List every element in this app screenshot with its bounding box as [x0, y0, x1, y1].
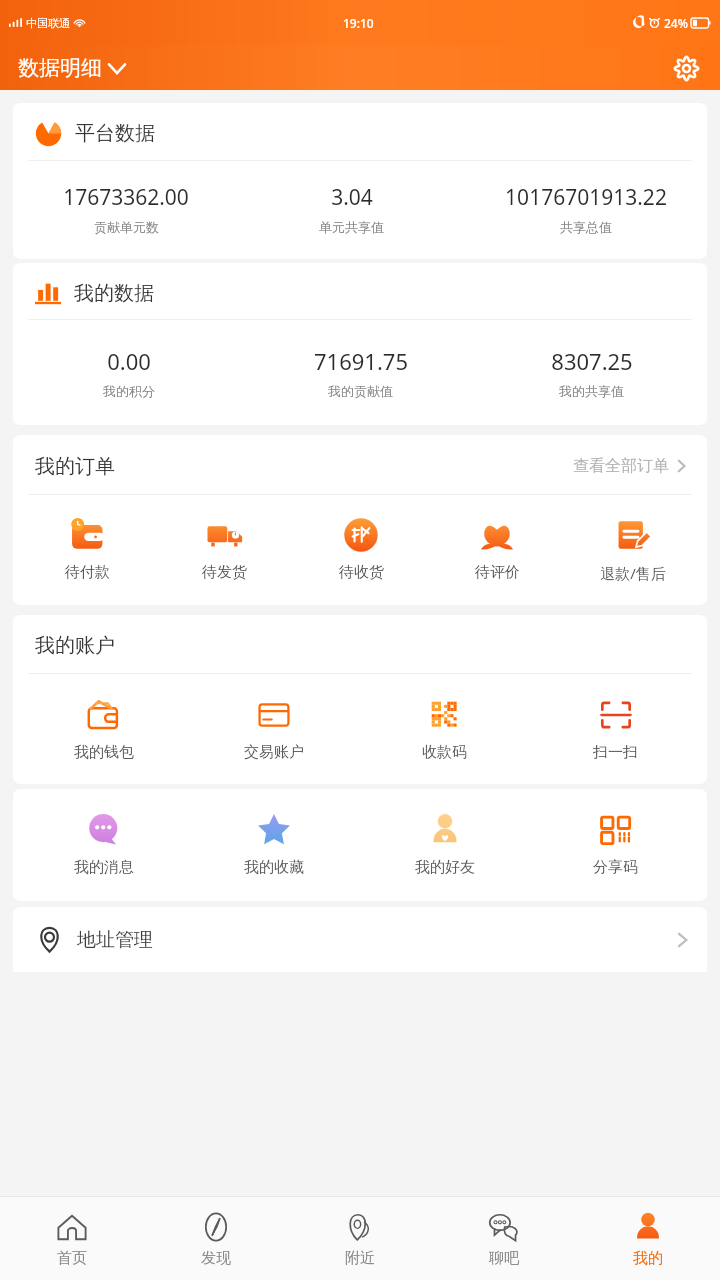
- staticText: 待付款: [65, 563, 110, 582]
- button[interactable]: 待付款: [19, 514, 156, 584]
- staticText: 数据明细: [18, 55, 102, 81]
- button[interactable]: 17673362.00: [13, 183, 239, 235]
- staticText: 交易账户: [244, 743, 304, 762]
- button[interactable]: 71691.75: [245, 346, 476, 399]
- staticText: 共享总值: [560, 219, 612, 235]
- button[interactable]: 0.00: [13, 346, 245, 399]
- staticText: 退款/售后: [600, 563, 666, 583]
- button[interactable]: 我的消息: [19, 809, 189, 879]
- button[interactable]: 地址管理: [13, 907, 707, 972]
- button[interactable]: 我的收藏: [189, 809, 359, 879]
- button[interactable]: 我的好友: [359, 809, 530, 879]
- staticText: 附近: [345, 1249, 375, 1268]
- staticText: 我的共享值: [559, 383, 624, 399]
- staticText: 0.00: [107, 346, 151, 376]
- button[interactable]: 发现: [144, 1197, 288, 1280]
- staticText: 我的消息: [74, 858, 134, 877]
- staticText: 24%: [664, 15, 688, 31]
- button[interactable]: 交易账户: [189, 694, 359, 764]
- staticText: 平台数据: [75, 121, 155, 146]
- staticText: 查看全部订单: [573, 456, 669, 476]
- staticText: 扫一扫: [593, 743, 638, 762]
- staticText: 我的好友: [415, 858, 475, 877]
- button[interactable]: 待评价: [429, 514, 565, 584]
- button[interactable]: Settings: [668, 50, 704, 86]
- button[interactable]: 退款/售后: [565, 514, 701, 585]
- staticText: 中国联通: [26, 16, 70, 30]
- staticText: 17673362.00: [63, 183, 189, 212]
- button[interactable]: 附近: [288, 1197, 432, 1280]
- button[interactable]: 我的钱包: [19, 694, 189, 764]
- staticText: 我的贡献值: [328, 383, 393, 399]
- button[interactable]: 待发货: [156, 514, 293, 584]
- staticText: 我的积分: [103, 383, 155, 399]
- button[interactable]: 聊吧: [432, 1197, 576, 1280]
- staticText: 地址管理: [77, 928, 153, 952]
- button[interactable]: 分享码: [530, 809, 701, 879]
- button[interactable]: 3.04: [239, 183, 464, 235]
- staticText: 19:10: [343, 15, 374, 31]
- staticText: 我的收藏: [244, 858, 304, 877]
- staticText: 待评价: [475, 563, 520, 582]
- staticText: 分享码: [593, 858, 638, 877]
- button[interactable]: 首页: [0, 1197, 144, 1280]
- staticText: 71691.75: [314, 346, 408, 376]
- button[interactable]: 8307.25: [476, 346, 707, 399]
- button[interactable]: 收款码: [359, 694, 530, 764]
- staticText: 首页: [57, 1249, 87, 1268]
- staticText: 8307.25: [551, 346, 633, 376]
- button[interactable]: 待收货: [293, 514, 429, 584]
- staticText: 聊吧: [489, 1249, 519, 1268]
- staticText: 待收货: [339, 563, 384, 582]
- staticText: 3.04: [331, 183, 373, 212]
- staticText: 我的订单: [35, 454, 115, 479]
- staticText: 我的: [633, 1249, 663, 1268]
- staticText: 单元共享值: [319, 219, 384, 235]
- staticText: 10176701913.22: [505, 183, 667, 212]
- staticText: 我的钱包: [74, 743, 134, 762]
- button[interactable]: 数据明细: [18, 51, 125, 85]
- button[interactable]: 查看全部订单: [569, 452, 689, 480]
- staticText: 发现: [201, 1249, 231, 1268]
- button[interactable]: 扫一扫: [530, 694, 701, 764]
- staticText: 贡献单元数: [94, 219, 159, 235]
- staticText: 我的数据: [74, 281, 154, 306]
- button[interactable]: 我的: [576, 1197, 720, 1280]
- staticText: 我的账户: [35, 633, 115, 658]
- staticText: 收款码: [422, 743, 467, 762]
- button[interactable]: 10176701913.22: [464, 183, 707, 235]
- staticText: 待发货: [202, 563, 247, 582]
